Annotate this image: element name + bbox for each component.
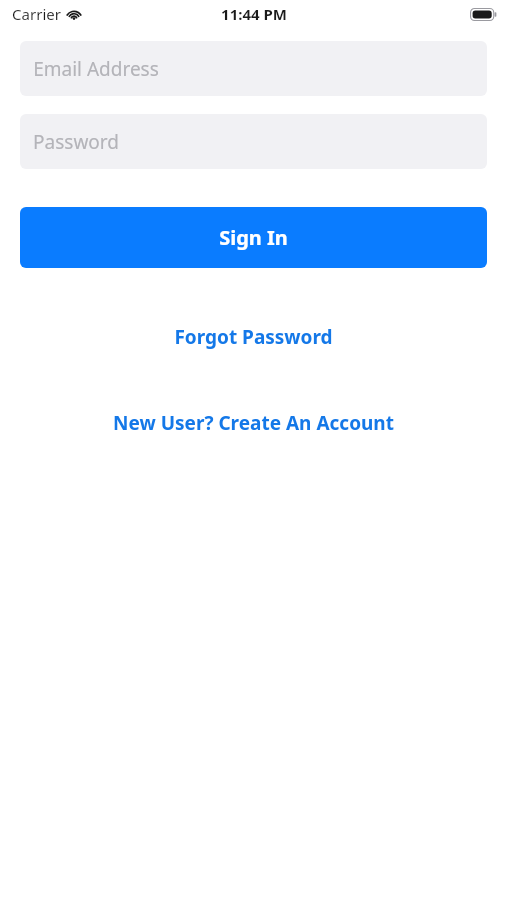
staticText: Password	[33, 129, 119, 155]
staticText: Sign In	[219, 224, 288, 251]
button[interactable]: Password	[20, 114, 487, 169]
button[interactable]: Forgot Password	[0, 318, 507, 356]
staticText: New User? Create An Account	[113, 410, 394, 436]
staticText: Carrier	[12, 4, 61, 24]
button[interactable]: New User? Create An Account	[0, 404, 507, 442]
button[interactable]: Sign In	[20, 207, 487, 268]
staticText: Forgot Password	[174, 324, 333, 350]
staticText: Email Address	[33, 56, 159, 82]
button[interactable]: Email Address	[20, 41, 487, 96]
staticText: 11:44 PM	[221, 4, 287, 24]
